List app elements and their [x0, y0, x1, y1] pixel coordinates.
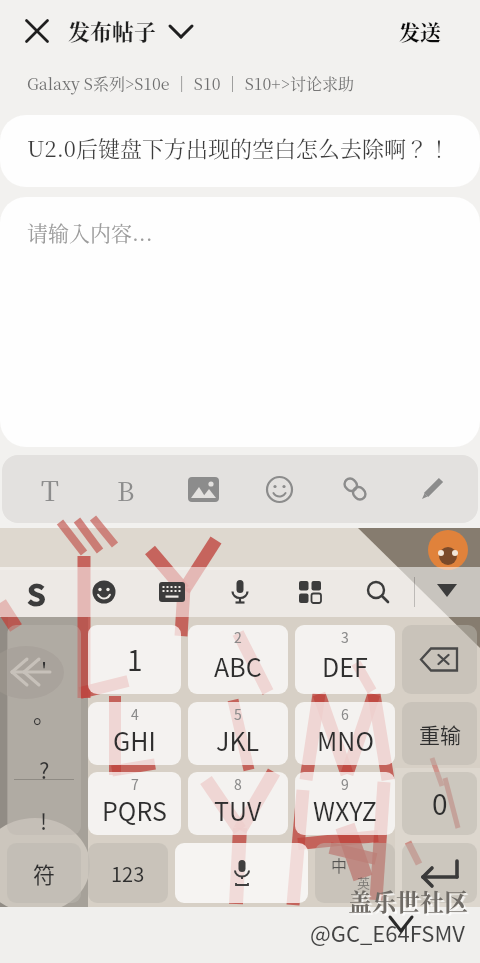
staticText: 2	[234, 627, 242, 647]
button[interactable]: 123	[88, 843, 168, 903]
staticText: !	[40, 804, 48, 835]
button[interactable]: B	[102, 465, 150, 513]
staticText: ?	[39, 753, 50, 785]
button[interactable]: 9	[295, 772, 395, 835]
staticText: 1	[127, 639, 143, 680]
button[interactable]: 3	[295, 625, 395, 694]
staticText: 7	[131, 774, 139, 794]
button[interactable]: 重输	[402, 702, 477, 765]
button[interactable]: 发送	[390, 12, 450, 50]
button[interactable]	[402, 843, 477, 903]
button[interactable]	[80, 568, 128, 616]
staticText: 符	[33, 857, 56, 889]
staticText: 发送	[399, 16, 441, 46]
button[interactable]: 请输入内容...	[0, 197, 480, 447]
button[interactable]: '	[7, 625, 81, 835]
staticText: 盖乐世社区	[348, 883, 468, 917]
staticText: GHI	[113, 722, 156, 758]
button[interactable]	[255, 465, 303, 513]
button[interactable]: 4	[88, 702, 181, 765]
button[interactable]	[354, 568, 402, 616]
button[interactable]	[428, 530, 468, 570]
staticText: 请输入内容...	[27, 217, 153, 247]
button[interactable]	[286, 568, 334, 616]
staticText: 5	[234, 704, 242, 724]
button[interactable]	[408, 465, 456, 513]
button[interactable]: U2.0后键盘下方出现的空白怎么去除啊？！	[0, 115, 480, 187]
button[interactable]: 中	[315, 843, 395, 903]
staticText: ABC	[214, 648, 262, 684]
button[interactable]: 0	[402, 772, 477, 835]
button[interactable]: 7	[88, 772, 181, 835]
button[interactable]: 2	[188, 625, 288, 694]
staticText: WXYZ	[313, 792, 377, 828]
button[interactable]	[216, 568, 264, 616]
staticText: DEF	[322, 648, 368, 684]
button[interactable]: T	[26, 465, 74, 513]
staticText: '	[41, 653, 48, 685]
staticText: Galaxy S系列>S10e ｜ S10 ｜ S10+>讨论求助	[27, 72, 354, 95]
button[interactable]: 符	[7, 843, 81, 903]
staticText: 8	[234, 774, 242, 794]
staticText: 。	[33, 697, 56, 729]
staticText: 0	[432, 783, 448, 824]
staticText: 发布帖子	[68, 15, 157, 47]
button[interactable]	[425, 568, 469, 612]
staticText: @GC_E64FSMV	[310, 916, 465, 948]
button[interactable]: 5	[188, 702, 288, 765]
staticText: MNO	[317, 722, 374, 758]
button[interactable]: 8	[188, 772, 288, 835]
staticText: JKL	[216, 722, 260, 758]
staticText: U2.0后键盘下方出现的空白怎么去除啊？！	[27, 132, 450, 164]
staticText: 3	[341, 627, 349, 647]
button[interactable]	[179, 465, 227, 513]
button[interactable]: 6	[295, 702, 395, 765]
staticText: PQRS	[102, 792, 167, 828]
staticText: 英	[357, 873, 371, 892]
staticText: 中	[331, 853, 348, 876]
staticText: 6	[341, 704, 349, 724]
button[interactable]	[331, 465, 379, 513]
staticText: S	[27, 571, 46, 614]
staticText: T	[41, 470, 59, 509]
staticText: B	[117, 471, 135, 508]
staticText: 9	[341, 774, 349, 794]
button[interactable]	[148, 568, 196, 616]
staticText: 123	[111, 859, 145, 888]
button[interactable]: S	[12, 568, 60, 616]
button[interactable]	[18, 12, 56, 50]
button[interactable]: 1	[88, 625, 181, 694]
button[interactable]	[175, 843, 308, 903]
button[interactable]: 发布帖子	[68, 12, 193, 50]
staticText: 重输	[419, 719, 461, 749]
staticText: TUV	[214, 792, 262, 828]
button[interactable]	[402, 625, 477, 694]
staticText: 4	[131, 704, 139, 724]
